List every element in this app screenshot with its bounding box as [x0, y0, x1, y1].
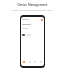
staticText: Devices — [22, 18, 29, 21]
button[interactable]: Activity — [33, 60, 37, 64]
button[interactable]: Home — [22, 60, 26, 64]
button[interactable]: Devices — [28, 60, 32, 64]
button[interactable]: Settings — [39, 60, 43, 64]
button[interactable] — [22, 34, 25, 36]
staticText: Monitor and control every connected devi… — [11, 9, 53, 12]
staticText: Device Management — [17, 3, 48, 7]
